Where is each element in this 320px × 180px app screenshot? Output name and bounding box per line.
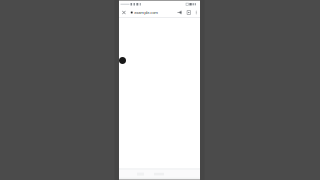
staticText: example.com: [134, 10, 158, 15]
button[interactable]: More options: [196, 10, 197, 15]
button[interactable]: Close: [122, 10, 126, 15]
button[interactable]: Save page: [186, 10, 191, 15]
button[interactable]: Share: [177, 10, 182, 15]
